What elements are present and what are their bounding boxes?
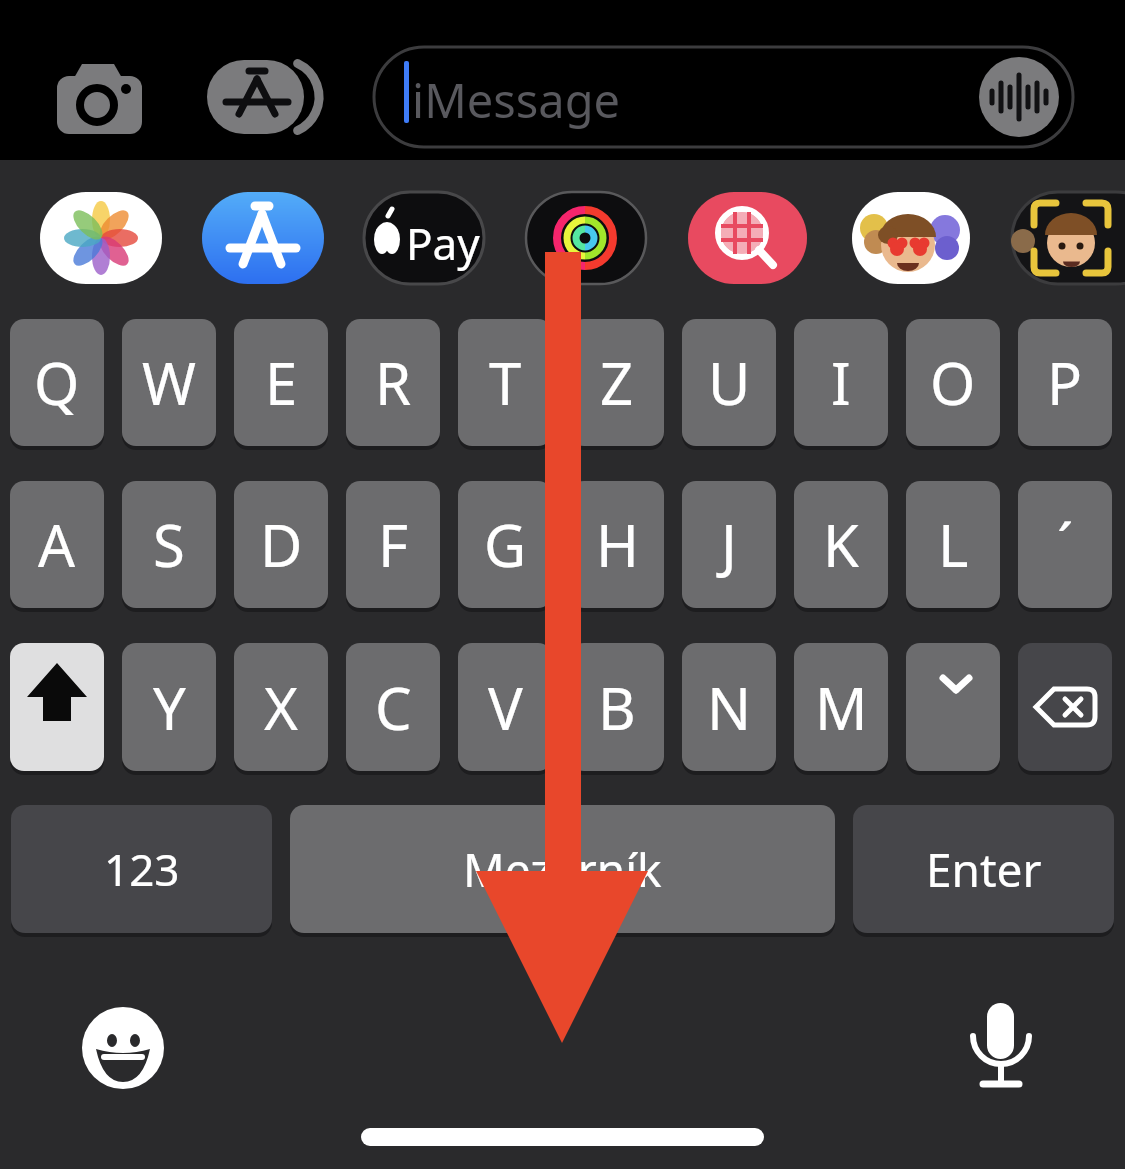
button[interactable] (688, 192, 807, 284)
button[interactable]: D (234, 481, 328, 608)
button[interactable]: Z (570, 319, 664, 446)
button[interactable] (205, 50, 325, 145)
staticText: S (153, 505, 185, 584)
staticText: R (375, 343, 412, 422)
staticText: G (484, 505, 527, 584)
button[interactable]: V (458, 643, 552, 771)
button[interactable]: A (10, 481, 104, 608)
staticText: A (38, 505, 76, 584)
staticText: Y (153, 668, 186, 747)
staticText: B (598, 668, 636, 747)
staticText: Pay (406, 213, 480, 273)
staticText: J (721, 505, 737, 584)
staticText: Mezerník (463, 838, 662, 901)
button[interactable] (40, 192, 162, 284)
button[interactable]: Y (122, 643, 216, 771)
button[interactable]: Enter (853, 805, 1114, 933)
staticText: N (707, 668, 752, 747)
staticText: E (265, 343, 298, 422)
staticText: D (260, 505, 303, 584)
staticText: K (823, 505, 859, 584)
staticText: ´ (1057, 505, 1074, 584)
button[interactable]: R (346, 319, 440, 446)
button[interactable] (955, 1000, 1055, 1100)
staticText: P (1047, 343, 1083, 422)
staticText: iMessage (412, 68, 621, 132)
staticText: T (489, 343, 522, 422)
button[interactable]: W (122, 319, 216, 446)
staticText: Q (34, 343, 80, 422)
button[interactable] (374, 47, 1073, 147)
staticText: W (142, 343, 196, 422)
button[interactable] (10, 643, 104, 771)
button[interactable]: U (682, 319, 776, 446)
button[interactable] (1018, 643, 1112, 771)
button[interactable] (852, 192, 970, 284)
button[interactable]: S (122, 481, 216, 608)
staticText: X (264, 668, 298, 747)
staticText: C (375, 668, 412, 747)
button[interactable]: H (570, 481, 664, 608)
staticText: F (378, 505, 409, 584)
staticText: Enter (926, 838, 1042, 901)
button[interactable]: E (234, 319, 328, 446)
button[interactable]: P (1018, 319, 1112, 446)
staticText: H (596, 505, 639, 584)
staticText: U (708, 343, 751, 422)
button[interactable]: Mezerník (290, 805, 835, 933)
staticText: M (815, 668, 868, 747)
button[interactable]: B (570, 643, 664, 771)
button[interactable]: M (794, 643, 888, 771)
button[interactable]: I (794, 319, 888, 446)
button[interactable] (50, 55, 150, 145)
staticText: O (930, 343, 976, 422)
button[interactable] (526, 192, 646, 284)
button[interactable]: L (906, 481, 1000, 608)
button[interactable] (75, 1000, 175, 1100)
staticText: I (831, 343, 851, 422)
button[interactable]: K (794, 481, 888, 608)
staticText: 123 (104, 839, 180, 899)
button[interactable]: F (346, 481, 440, 608)
button[interactable] (202, 192, 324, 284)
button[interactable]: G (458, 481, 552, 608)
button[interactable]: ´ (1018, 481, 1112, 608)
staticText: L (938, 505, 969, 584)
button[interactable] (1012, 192, 1125, 284)
button[interactable]: N (682, 643, 776, 771)
button[interactable]: Q (10, 319, 104, 446)
button[interactable]: 123 (11, 805, 272, 933)
button[interactable]: J (682, 481, 776, 608)
staticText: V (488, 668, 523, 747)
button[interactable]: C (346, 643, 440, 771)
button[interactable] (906, 643, 1000, 771)
staticText: Z (600, 343, 634, 422)
button[interactable] (364, 192, 484, 284)
button[interactable]: X (234, 643, 328, 771)
button[interactable]: O (906, 319, 1000, 446)
button[interactable]: T (458, 319, 552, 446)
